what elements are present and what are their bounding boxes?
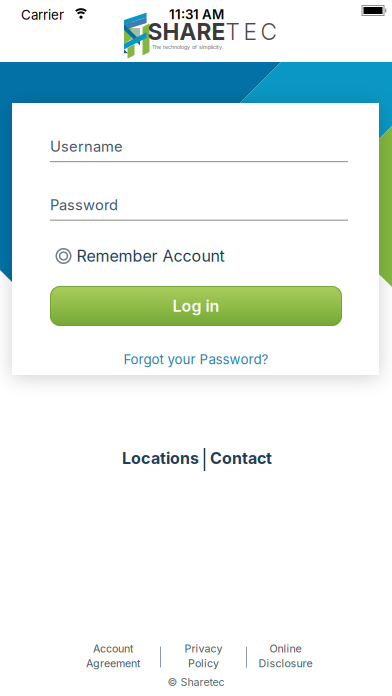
staticText: Online [269,642,301,655]
button[interactable]: Forgot your Password? [123,352,268,367]
staticText: Contact [210,449,272,468]
button[interactable]: Log in [50,286,342,326]
staticText: Password [50,196,118,214]
button[interactable]: Account [86,642,140,670]
staticText: The technology of simplicity. [152,44,224,50]
staticText: © Sharetec [167,676,224,688]
staticText: Locations [122,449,199,468]
staticText: SHARE [147,18,225,45]
staticText: Forgot your Password? [123,352,268,367]
staticText: 11:31 AM [169,7,224,22]
staticText: Privacy [184,642,222,655]
staticText: Log in [172,297,219,315]
staticText: Username [50,138,123,155]
button[interactable]: Contact [210,449,272,468]
staticText: Disclosure [258,657,312,670]
staticText: Carrier [21,7,64,23]
button[interactable]: Password [50,196,348,221]
button[interactable]: Online [258,642,312,670]
button[interactable]: Privacy [184,642,222,670]
staticText: TEC [225,18,276,45]
button[interactable]: Username [50,138,348,162]
button[interactable]: Remember Account [55,247,224,265]
button[interactable]: Locations [122,449,199,468]
staticText: Policy [188,657,219,670]
staticText: Agreement [86,657,140,670]
staticText: Account [93,642,133,655]
staticText: Remember Account [76,247,224,265]
